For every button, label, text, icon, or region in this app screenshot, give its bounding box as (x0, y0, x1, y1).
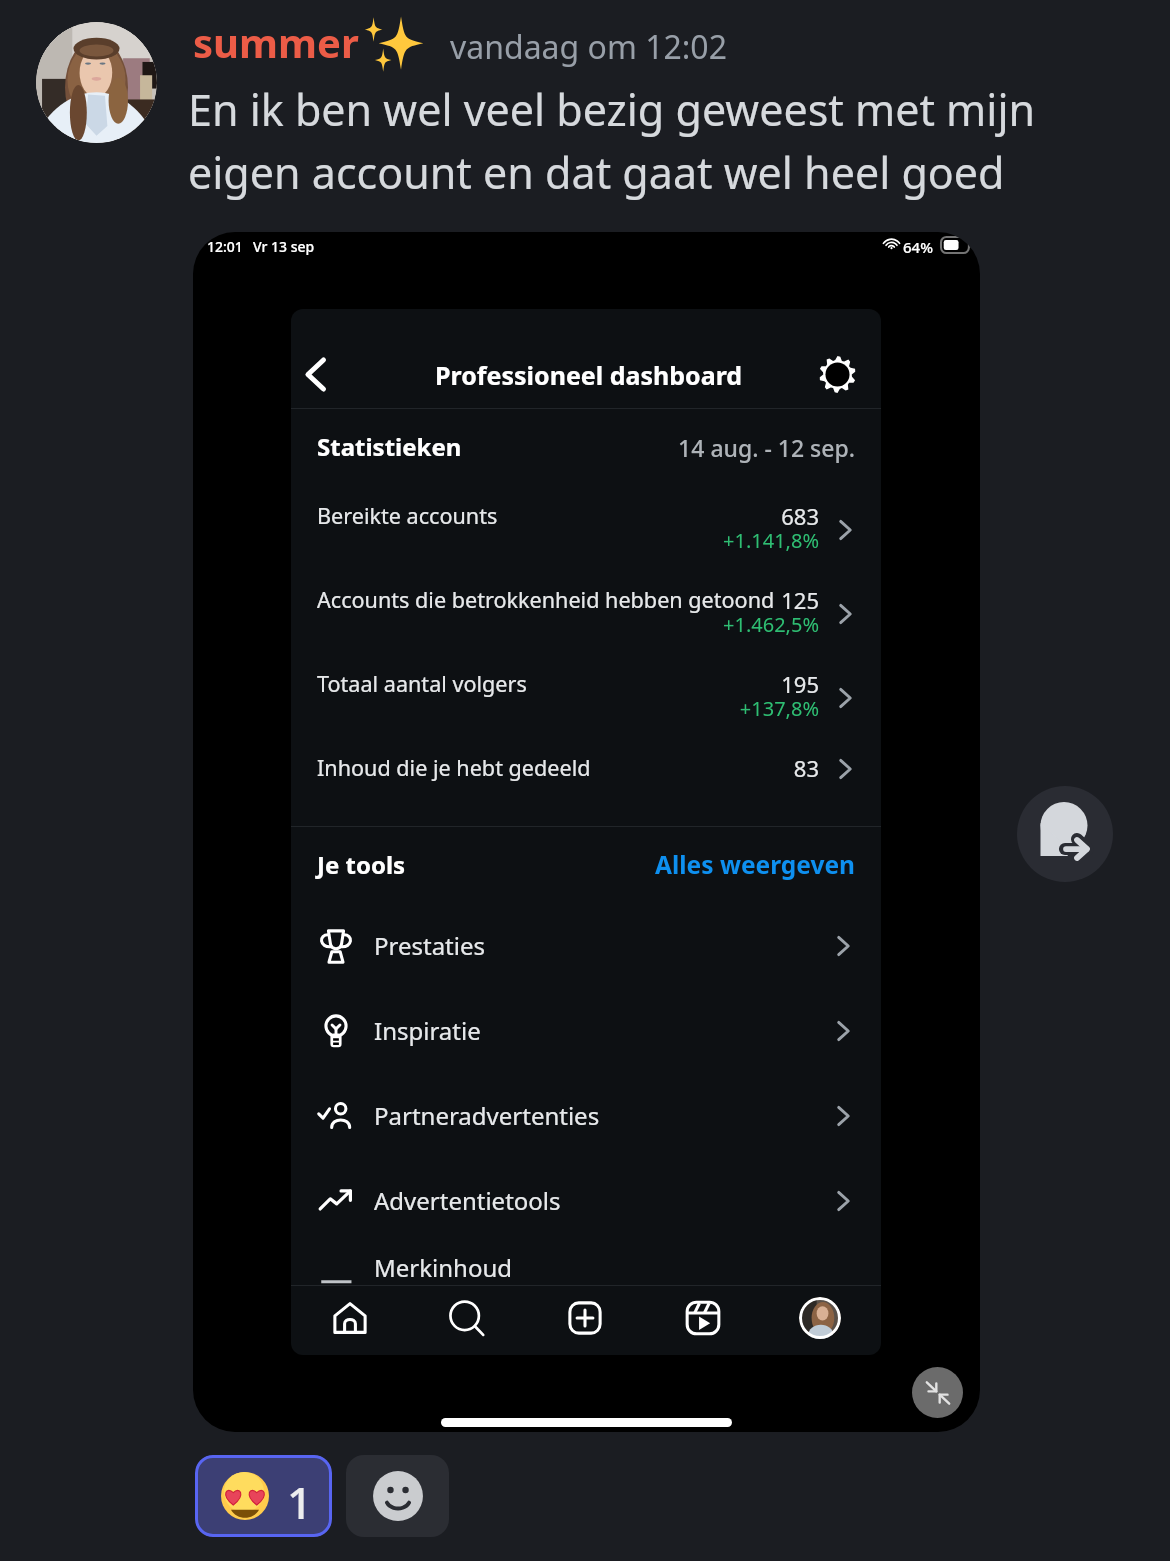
button[interactable]: Merkinhoud (291, 1226, 881, 1310)
button[interactable]: Forward message (1017, 786, 1113, 882)
staticText: Vr 13 sep (253, 237, 315, 256)
staticText: vandaag om 12:02 (450, 25, 727, 69)
staticText: Inspiratie (374, 1014, 481, 1047)
button[interactable]: Back (292, 351, 338, 397)
button[interactable]: Totaal aantal volgers (291, 643, 881, 723)
staticText: Partneradvertenties (374, 1099, 600, 1132)
staticText: Professioneel dashboard (435, 358, 743, 392)
button[interactable]: Settings (814, 351, 860, 397)
staticText: Prestaties (374, 929, 485, 962)
staticText: Advertentietools (374, 1184, 561, 1217)
button[interactable]: Inspiratie (291, 989, 881, 1073)
button[interactable]: Create (545, 1284, 625, 1352)
button[interactable]: Collapse (912, 1367, 963, 1418)
staticText: 1 (287, 1472, 313, 1532)
button[interactable]: Accounts die betrokkenheid hebben getoon… (291, 559, 881, 639)
staticText: Statistieken (317, 430, 462, 463)
staticText: +1.462,5% (671, 611, 819, 638)
staticText: Merkinhoud (374, 1251, 512, 1284)
staticText: Accounts die betrokkenheid hebben getoon… (317, 585, 775, 614)
staticText: 14 aug. - 12 sep. (655, 432, 855, 463)
staticText: Totaal aantal volgers (317, 669, 527, 698)
staticText: Alles weergeven (645, 848, 855, 881)
staticText: +1.141,8% (671, 527, 819, 554)
button[interactable]: summer profile picture (36, 22, 157, 143)
button[interactable]: Home (310, 1284, 390, 1352)
staticText: Inhoud die je hebt gedeeld (317, 753, 591, 782)
staticText: 64% (903, 237, 933, 257)
button[interactable]: Advertentietools (291, 1159, 881, 1243)
staticText: En ik ben wel veel bezig geweest met mij… (188, 80, 1068, 202)
button[interactable]: Partneradvertenties (291, 1074, 881, 1158)
button[interactable]: Add reaction (346, 1455, 449, 1537)
staticText: 83 (691, 753, 819, 783)
button[interactable]: 1 (195, 1455, 332, 1537)
button[interactable]: Prestaties (291, 904, 881, 988)
staticText: 683 (691, 501, 819, 531)
button[interactable]: Bereikte accounts (291, 475, 881, 555)
button[interactable]: summer (193, 15, 359, 69)
button[interactable]: Search (427, 1284, 507, 1352)
staticText: Bereikte accounts (317, 501, 498, 530)
staticText: 125 (691, 585, 819, 615)
button[interactable]: Alles weergeven (645, 848, 855, 881)
staticText: 195 (691, 669, 819, 699)
staticText: +137,8% (671, 695, 819, 722)
staticText: summer (193, 15, 359, 69)
button[interactable]: Screenshot attachment (193, 232, 980, 1432)
staticText: Je tools (317, 848, 406, 881)
staticText: 12:01 (207, 237, 243, 256)
button[interactable]: Inhoud die je hebt gedeeld (291, 727, 881, 807)
button[interactable]: Profile (780, 1284, 860, 1352)
button[interactable]: Reels (663, 1284, 743, 1352)
